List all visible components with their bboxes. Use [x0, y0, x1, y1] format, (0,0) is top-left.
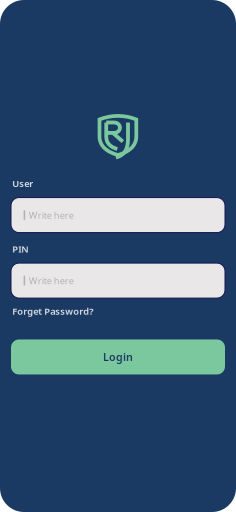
button[interactable]: Login [11, 339, 225, 374]
staticText: Write here [29, 209, 74, 221]
staticText: PIN [12, 243, 28, 255]
staticText: Forget Password? [12, 305, 93, 317]
button[interactable]: Forget Password? [12, 305, 93, 317]
staticText: Write here [29, 274, 74, 287]
staticText: User [12, 177, 33, 190]
staticText: Login [103, 350, 133, 364]
